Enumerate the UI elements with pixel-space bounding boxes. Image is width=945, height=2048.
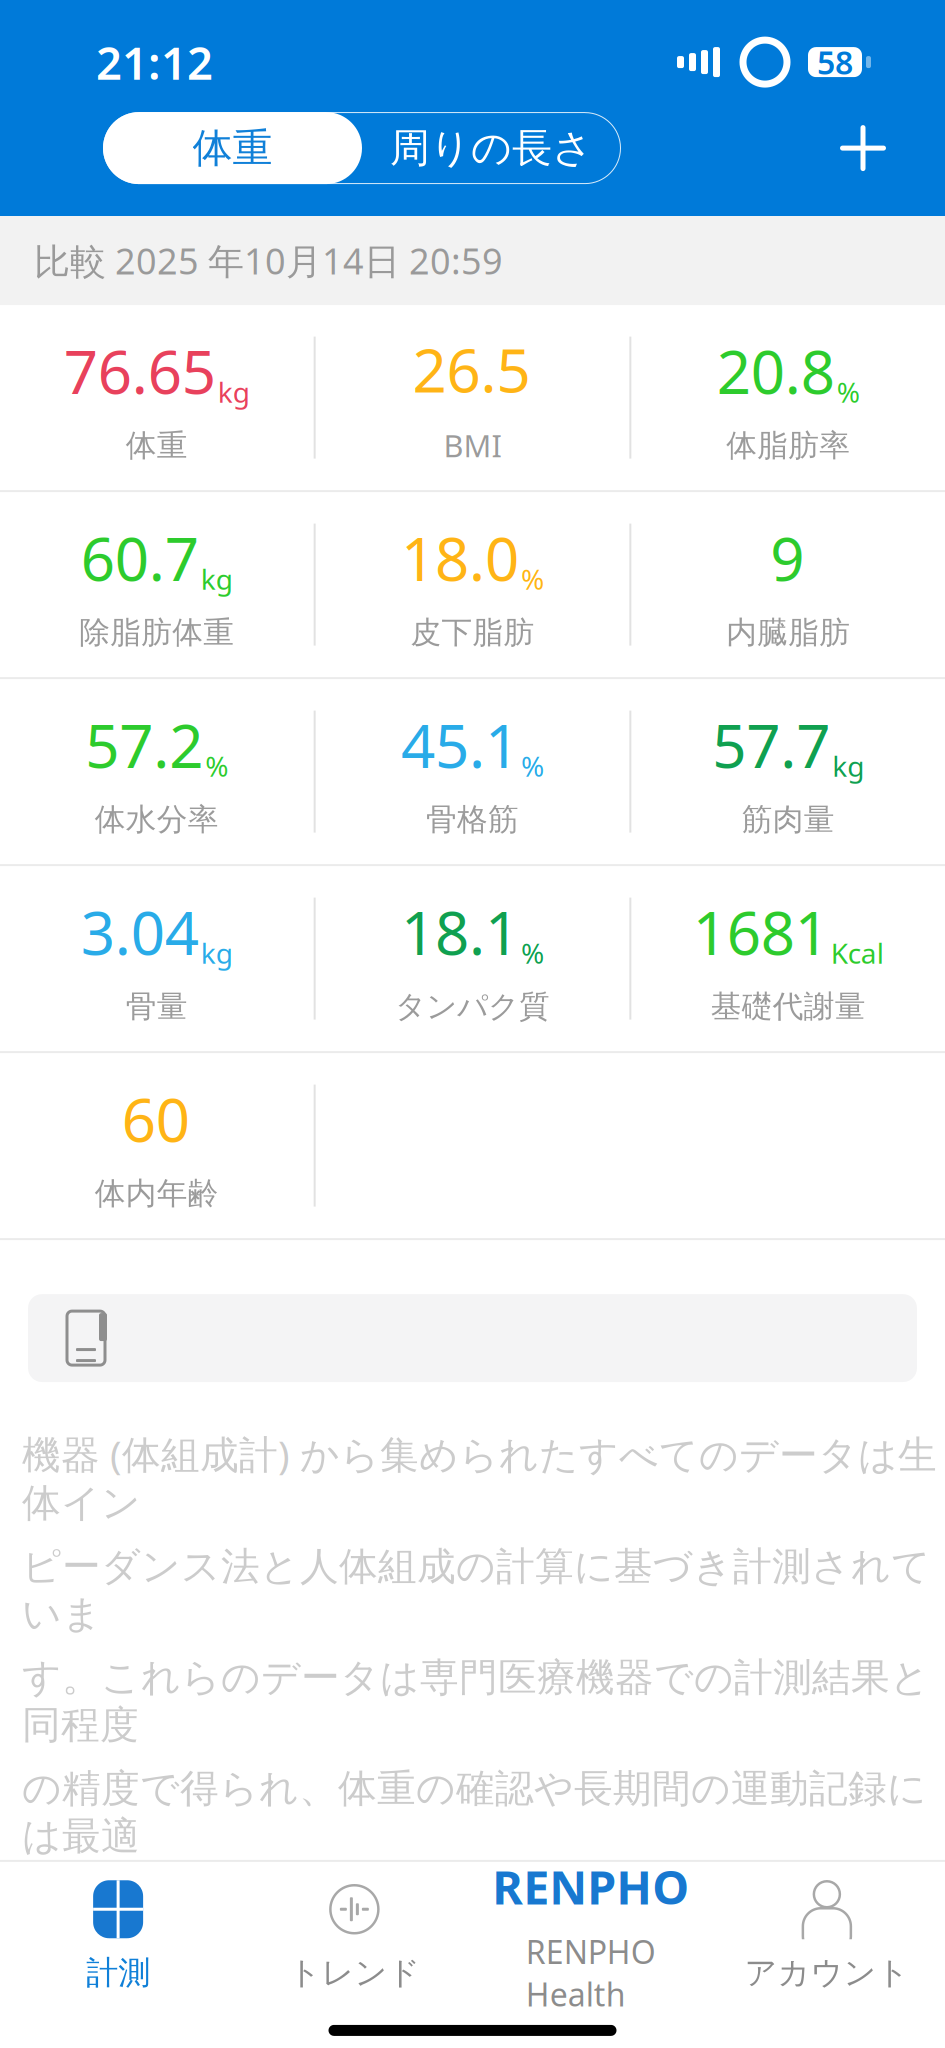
staticText: Kcal <box>831 934 884 972</box>
staticText: 26.5 <box>412 329 530 409</box>
button[interactable]: トレンド <box>236 1872 472 2000</box>
staticText: kg <box>832 747 864 785</box>
staticText: 骨格筋 <box>426 801 519 838</box>
staticText: % <box>205 747 228 785</box>
staticText: 18.1 <box>401 892 519 972</box>
staticText: 60.7 <box>81 518 199 598</box>
staticText: 21:12 <box>96 32 213 92</box>
staticText: 機器 (体組成計) から集められたすべてのデータは生体イン <box>22 1428 937 1527</box>
staticText: 周りの長さ <box>390 123 593 173</box>
staticText: 76.65 <box>64 331 216 411</box>
button[interactable]: 計測 <box>0 1872 236 2000</box>
staticText: アカウント <box>744 1953 909 1993</box>
staticText: 体脂肪率 <box>726 427 850 464</box>
staticText: 9 <box>770 518 804 598</box>
staticText: 体重 <box>126 427 188 464</box>
staticText: トレンド <box>288 1953 420 1993</box>
staticText: kg <box>218 373 250 411</box>
staticText: 筋肉量 <box>742 801 835 838</box>
staticText: 1681 <box>693 892 829 972</box>
staticText: 計測 <box>86 1953 150 1993</box>
staticText: 骨量 <box>126 988 188 1025</box>
staticText: BMI <box>443 425 501 466</box>
staticText: 基礎代謝量 <box>711 988 866 1025</box>
staticText: タンパク質 <box>395 988 550 1025</box>
staticText: 45.1 <box>401 705 519 785</box>
staticText: kg <box>201 560 233 598</box>
staticText: 体内年齢 <box>95 1175 219 1212</box>
staticText: 皮下脂肪 <box>410 614 534 651</box>
button[interactable]: 体重 <box>103 112 362 184</box>
button[interactable]: RENPHO <box>472 1872 709 2000</box>
staticText: 内臓脂肪 <box>726 614 850 651</box>
staticText: kg <box>201 934 233 972</box>
button[interactable]: 追加 <box>821 106 905 190</box>
staticText: 体重 <box>192 123 272 173</box>
staticText: 除脂肪体重 <box>79 614 234 651</box>
button[interactable]: メモを編集 <box>28 1294 917 1382</box>
staticText: 57.7 <box>712 705 830 785</box>
staticText: す。これらのデータは専門医療機器での計測結果と同程度 <box>22 1654 930 1749</box>
staticText: % <box>521 560 544 598</box>
staticText: 18.0 <box>401 518 519 598</box>
staticText: 比較 2025 年10月14日 20:59 <box>34 237 503 284</box>
staticText: 60 <box>122 1079 190 1159</box>
button[interactable]: アカウント <box>709 1872 945 2000</box>
staticText: 58 <box>817 41 853 83</box>
staticText: % <box>521 934 544 972</box>
button[interactable]: 周りの長さ <box>362 112 621 184</box>
staticText: RENPHO Health <box>526 1930 656 2015</box>
staticText: 体水分率 <box>95 801 219 838</box>
staticText: ピーダンス法と人体組成の計算に基づき計測されていま <box>22 1543 931 1638</box>
staticText: 3.04 <box>81 892 199 972</box>
staticText: RENPHO <box>492 1855 689 1917</box>
staticText: % <box>837 373 860 411</box>
staticText: 20.8 <box>717 331 835 411</box>
staticText: % <box>521 747 544 785</box>
staticText: の精度で得られ、体重の確認や長期間の運動記録には最適 <box>22 1765 927 1860</box>
staticText: 57.2 <box>85 705 203 785</box>
